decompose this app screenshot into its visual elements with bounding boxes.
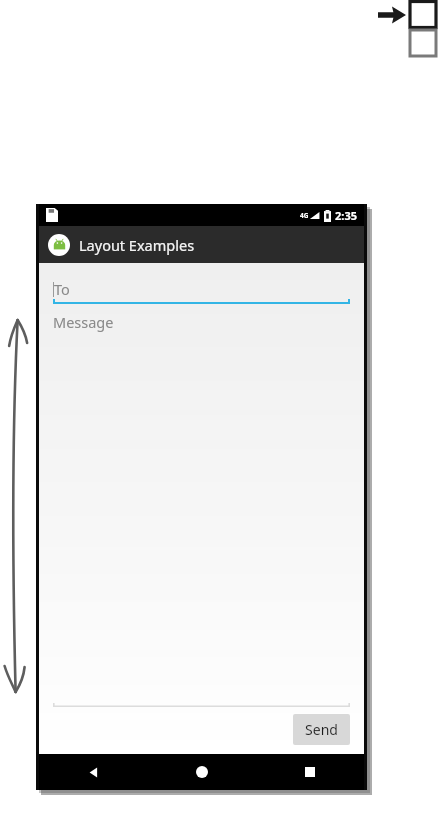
button[interactable]: Recent apps [256,754,364,790]
staticText: 2:35 [335,208,357,223]
staticText: Layout Examples [79,235,195,255]
button[interactable]: To [53,274,350,304]
button[interactable]: Back [39,754,148,790]
staticText: 4G [300,211,309,220]
staticText: To [54,279,70,299]
staticText: Send [305,720,338,739]
button[interactable]: Home [148,754,256,790]
button[interactable]: Message [53,310,350,707]
button[interactable]: Layout Examples [39,226,364,263]
button[interactable]: Send [293,714,350,745]
staticText: Message [53,312,114,332]
